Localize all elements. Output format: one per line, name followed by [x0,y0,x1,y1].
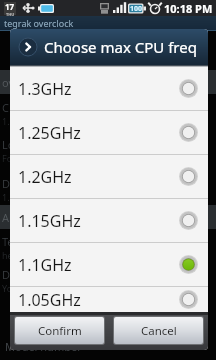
button[interactable]: 1.2GHz [10,155,208,198]
staticText: 1.15GHz [18,210,81,232]
staticText: About phone [2,210,70,225]
staticText: For battery life [2,152,64,164]
staticText: help and support [2,249,75,261]
button[interactable]: Cancel [114,317,203,344]
button[interactable]: 1.1GHz [10,243,208,286]
button[interactable]: 1.3GHz [10,67,208,110]
staticText: Tegrak kernel [2,234,73,249]
staticText: Confirm [38,323,82,339]
staticText: overclock [2,75,51,90]
staticText: 1.1GHz [18,254,72,276]
staticText: Your device [2,282,51,294]
button[interactable]: 1.15GHz [10,199,208,242]
button[interactable]: Confirm [15,317,104,344]
staticText: CPU governor [2,100,75,115]
staticText: 1.2GHz [18,166,72,188]
button[interactable]: 1.05GHz [10,287,208,312]
staticText: Low voltage [2,137,64,152]
staticText: 100 [130,4,143,14]
staticText: 1.05GHz [18,289,81,311]
staticText: 1.0GHz [2,191,33,203]
staticText: Choose max CPU freq [44,37,197,57]
button[interactable]: 1.25GHz [10,111,208,154]
staticText: Device info [2,267,59,282]
staticText: Cancel [141,323,177,339]
staticText: 17 [5,1,15,12]
staticText: THU [6,12,15,16]
staticText: 10:18 PM [164,1,213,16]
staticText: tegrak overclock [4,17,74,29]
staticText: 1.25GHz [18,122,81,144]
staticText: Model number [5,339,82,354]
staticText: 1.3GHz [18,78,72,100]
staticText: 1.0GHz / conservative [2,115,94,127]
staticText: Dual core [2,176,52,191]
